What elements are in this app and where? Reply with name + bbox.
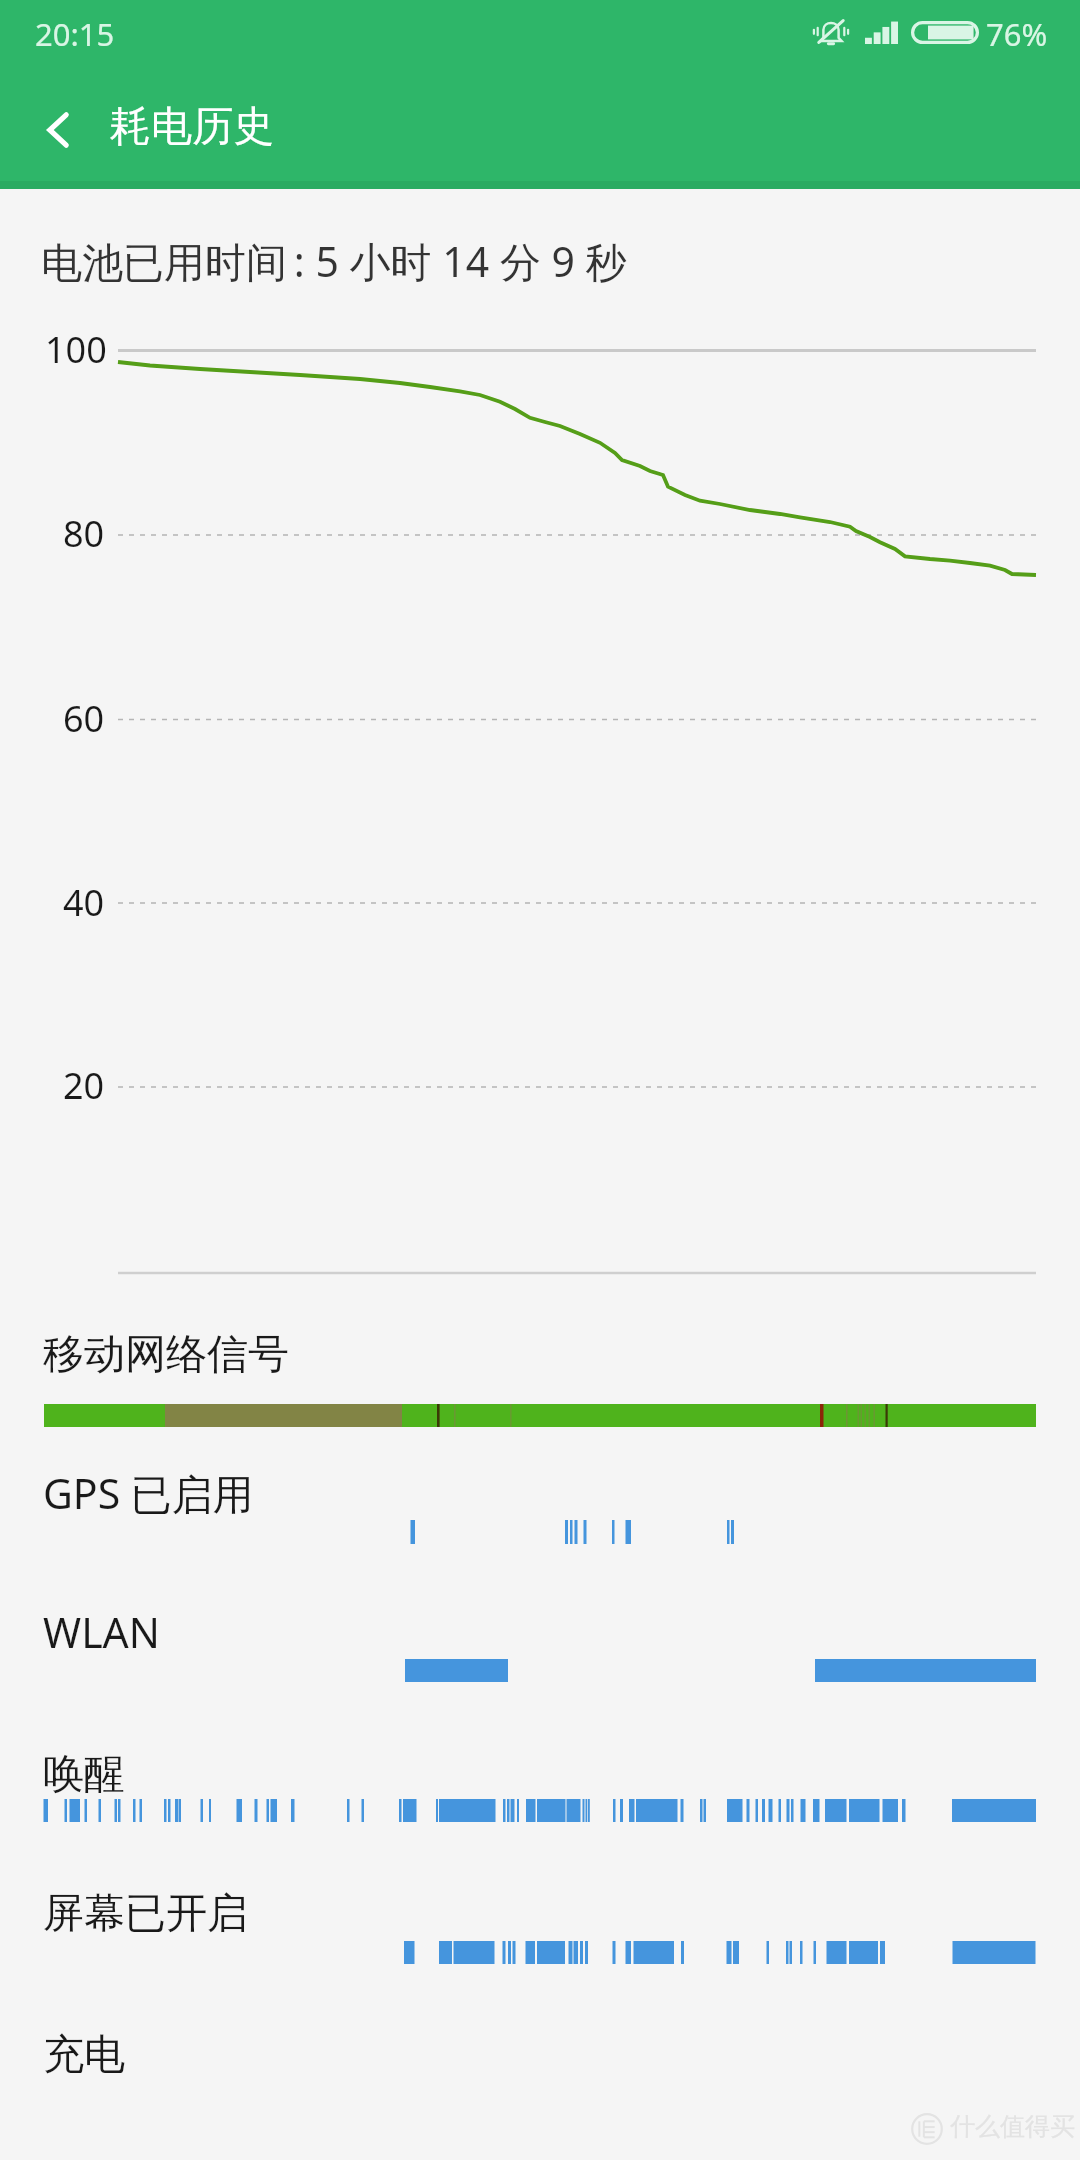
button[interactable]: 充电 bbox=[0, 2005, 1080, 2135]
staticText: 唤醒 bbox=[43, 1749, 125, 1801]
other: Silent mode bbox=[812, 16, 850, 49]
staticText: 40 bbox=[63, 878, 105, 927]
staticText: 76% bbox=[986, 13, 1048, 55]
staticText: 60 bbox=[63, 694, 105, 743]
staticText: WLAN bbox=[43, 1604, 160, 1660]
button[interactable]: 唤醒 bbox=[0, 1725, 1080, 1865]
staticText: 耗电历史 bbox=[110, 101, 274, 153]
other: Mobile signal bbox=[865, 20, 898, 44]
staticText: 什么值得买 bbox=[950, 2111, 1075, 2142]
staticText: 20 bbox=[63, 1061, 105, 1110]
staticText: 充电 bbox=[43, 2029, 125, 2081]
button[interactable]: WLAN bbox=[0, 1585, 1080, 1725]
button[interactable]: 移动网络信号 bbox=[0, 1300, 1080, 1445]
staticText: 屏幕已开启 bbox=[43, 1888, 248, 1940]
staticText: 电池已用时间 : 5 小时 14 分 9 秒 bbox=[41, 233, 627, 289]
staticText: 100 bbox=[45, 325, 107, 374]
other: Battery 76 percent bbox=[911, 21, 979, 44]
staticText: GPS 已启用 bbox=[43, 1465, 254, 1521]
button[interactable]: 屏幕已开启 bbox=[0, 1865, 1080, 2005]
staticText: 80 bbox=[63, 509, 105, 558]
staticText: 移动网络信号 bbox=[43, 1329, 289, 1381]
button[interactable]: GPS 已启用 bbox=[0, 1445, 1080, 1585]
staticText: 20:15 bbox=[35, 13, 115, 55]
button[interactable]: Back bbox=[10, 68, 104, 181]
